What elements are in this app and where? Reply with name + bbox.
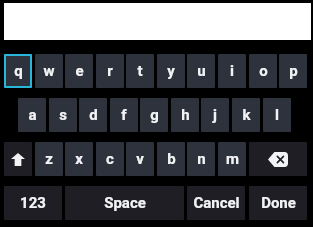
staticText: c [106, 150, 114, 168]
staticText: o [259, 62, 268, 80]
staticText: w [43, 62, 55, 80]
staticText: n [197, 150, 206, 168]
button[interactable]: y [157, 54, 185, 88]
staticText: q [14, 62, 23, 80]
button[interactable]: d [79, 98, 107, 132]
button[interactable]: e [65, 54, 93, 88]
staticText: j [213, 106, 217, 124]
staticText: y [167, 62, 175, 80]
button[interactable]: w [35, 54, 63, 88]
staticText: t [137, 62, 143, 80]
staticText: b [167, 150, 176, 168]
button[interactable]: q [4, 54, 32, 88]
button[interactable]: f [110, 98, 138, 132]
staticText: f [121, 106, 127, 124]
staticText: z [45, 150, 53, 168]
staticText: m [226, 150, 239, 168]
staticText: d [89, 106, 98, 124]
button[interactable]: n [187, 142, 215, 176]
button[interactable]: Done [249, 186, 307, 220]
button[interactable]: Cancel [187, 186, 245, 220]
staticText: 123 [20, 194, 46, 212]
button[interactable]: k [232, 98, 260, 132]
button[interactable]: a [18, 98, 46, 132]
button[interactable]: Space [65, 186, 184, 220]
staticText: Space [104, 194, 146, 212]
staticText: Cancel [193, 194, 240, 212]
staticText: v [136, 150, 144, 168]
button[interactable]: t [126, 54, 154, 88]
staticText: g [150, 106, 159, 124]
button[interactable]: m [218, 142, 246, 176]
button[interactable]: h [171, 98, 199, 132]
staticText: h [181, 106, 190, 124]
button[interactable]: i [218, 54, 246, 88]
button[interactable]: s [49, 98, 77, 132]
staticText: r [107, 62, 113, 80]
button[interactable]: 123 [4, 186, 62, 220]
button[interactable]: Shift [4, 142, 32, 176]
staticText: i [230, 62, 234, 80]
button[interactable]: o [249, 54, 277, 88]
staticText: p [289, 62, 298, 80]
button[interactable]: j [201, 98, 229, 132]
button[interactable]: r [96, 54, 124, 88]
staticText: x [75, 150, 83, 168]
staticText: s [59, 106, 67, 124]
button[interactable]: b [157, 142, 185, 176]
button[interactable]: x [65, 142, 93, 176]
button[interactable]: g [140, 98, 168, 132]
button[interactable]: c [96, 142, 124, 176]
staticText: a [28, 106, 37, 124]
staticText: Done [261, 194, 296, 212]
button[interactable]: z [35, 142, 63, 176]
staticText: e [75, 62, 84, 80]
staticText: u [197, 62, 206, 80]
button[interactable]: l [263, 98, 291, 132]
staticText: k [242, 106, 251, 124]
button[interactable]: v [126, 142, 154, 176]
staticText: l [275, 106, 279, 124]
button[interactable]: u [187, 54, 215, 88]
button[interactable]: p [279, 54, 307, 88]
button[interactable]: Backspace [249, 142, 307, 176]
